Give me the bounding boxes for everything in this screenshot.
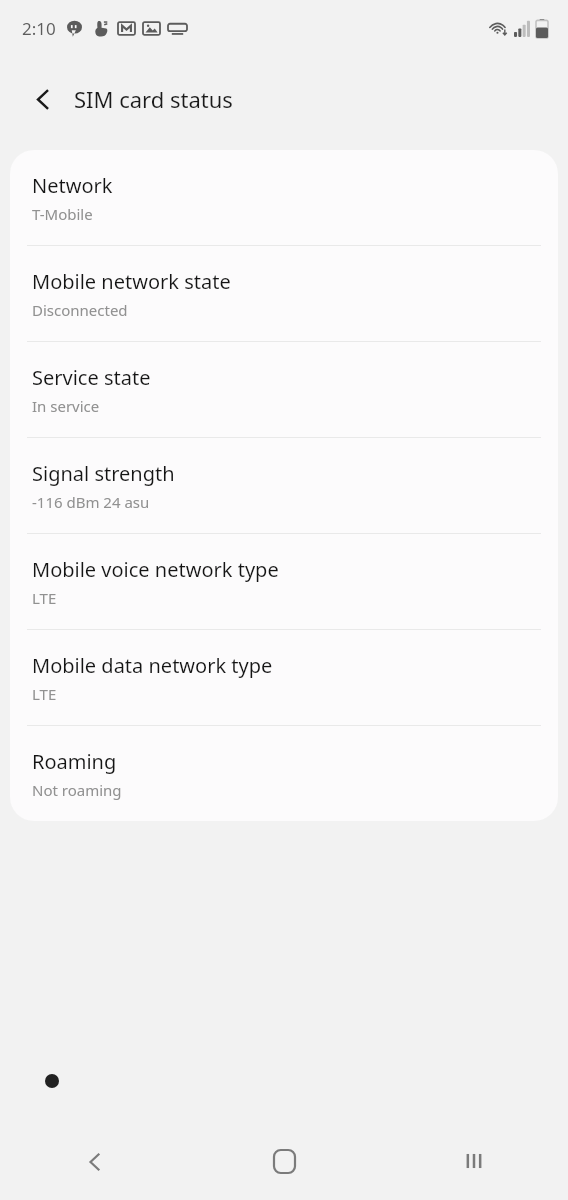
staticText: Mobile voice network type: [32, 556, 279, 583]
button[interactable]: Back: [0, 1122, 190, 1200]
button[interactable]: Signal strength: [10, 438, 558, 533]
button[interactable]: Service state: [10, 342, 558, 437]
staticText: Not roaming: [32, 780, 122, 800]
button[interactable]: Mobile voice network type: [10, 534, 558, 629]
staticText: SIM card status: [74, 84, 233, 114]
staticText: LTE: [32, 588, 57, 608]
staticText: In service: [32, 396, 100, 416]
staticText: 2:10: [22, 17, 56, 40]
staticText: Signal strength: [32, 460, 175, 487]
staticText: Mobile network state: [32, 268, 231, 295]
button[interactable]: Roaming: [10, 726, 558, 821]
staticText: Roaming: [32, 748, 117, 775]
staticText: Disconnected: [32, 300, 128, 320]
staticText: LTE: [32, 684, 57, 704]
button[interactable]: Network: [10, 150, 558, 245]
staticText: T-Mobile: [32, 204, 93, 224]
button[interactable]: Mobile network state: [10, 246, 558, 341]
staticText: Service state: [32, 364, 151, 391]
staticText: Mobile data network type: [32, 652, 273, 679]
staticText: -116 dBm 24 asu: [32, 492, 150, 512]
button[interactable]: Home: [190, 1122, 379, 1200]
button[interactable]: Recent apps: [379, 1122, 568, 1200]
staticText: Network: [32, 172, 113, 199]
button[interactable]: Mobile data network type: [10, 630, 558, 725]
button[interactable]: Navigate up: [20, 76, 66, 122]
